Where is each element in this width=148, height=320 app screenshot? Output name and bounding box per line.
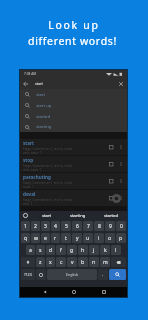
button[interactable]: k (100, 245, 110, 255)
staticText: g (70, 247, 74, 254)
staticText: Stage, Commencer il, rest to, shoot (23, 164, 73, 168)
button[interactable]: 6 (72, 221, 82, 231)
staticText: 8 (98, 223, 101, 230)
button[interactable]: t (61, 233, 71, 243)
button[interactable]: f (56, 245, 66, 255)
staticText: ?123 (24, 272, 32, 277)
staticText: English (66, 272, 79, 277)
staticText: starting (36, 124, 52, 130)
staticText: d (49, 247, 53, 254)
button[interactable]: Keyboard settings (22, 212, 29, 219)
button[interactable]: 5 (61, 221, 71, 231)
staticText: started (36, 114, 51, 120)
staticText: m (103, 259, 108, 266)
staticText: x (49, 259, 52, 266)
staticText: w (34, 235, 38, 242)
button[interactable]: h (78, 245, 88, 255)
staticText: y (76, 235, 79, 242)
staticText: f (60, 247, 62, 254)
button[interactable]: i (94, 233, 104, 243)
staticText: verb 1 (23, 202, 33, 206)
button[interactable]: English (47, 269, 97, 280)
button[interactable]: r (51, 233, 60, 243)
button[interactable]: c (56, 257, 66, 267)
button[interactable]: v (67, 257, 77, 267)
button[interactable]: x (46, 257, 55, 267)
button[interactable]: y (72, 233, 82, 243)
button[interactable]: q (21, 233, 30, 243)
staticText: start (36, 92, 46, 98)
staticText: parachuting (23, 174, 51, 180)
button[interactable]: Shift (21, 257, 35, 267)
button[interactable]: 2 (31, 221, 40, 231)
staticText: l (115, 247, 117, 254)
other: Back (23, 81, 29, 87)
button[interactable]: Scroll to top (112, 194, 121, 203)
staticText: z (39, 259, 42, 266)
button[interactable]: m (100, 257, 110, 267)
button[interactable]: 3 (41, 221, 50, 231)
other: Bookmark (109, 145, 114, 150)
button[interactable]: 9 (105, 221, 115, 231)
button[interactable]: p (116, 233, 126, 243)
staticText: 9 (109, 223, 112, 230)
button[interactable]: g (67, 245, 77, 255)
staticText: started (104, 213, 119, 219)
button[interactable]: o (105, 233, 115, 243)
button[interactable]: . (98, 269, 108, 280)
other: Clear search (118, 81, 124, 87)
other: More options (119, 145, 123, 149)
button[interactable]: 8 (94, 221, 104, 231)
button[interactable]: n (89, 257, 99, 267)
button[interactable]: Back (39, 287, 50, 297)
button[interactable]: start (20, 89, 127, 100)
button[interactable]: w (31, 233, 40, 243)
staticText: q (24, 235, 28, 242)
button[interactable]: 4 (51, 221, 60, 231)
button[interactable]: l (111, 245, 121, 255)
button[interactable]: start (20, 139, 127, 155)
button[interactable]: Back (20, 78, 127, 89)
button[interactable]: ?123 (21, 269, 35, 280)
button[interactable]: d (46, 245, 55, 255)
button[interactable]: e (41, 233, 50, 243)
button[interactable]: start up (20, 100, 127, 111)
staticText: . (102, 271, 104, 278)
staticText: 1 (24, 223, 27, 230)
staticText: start up (36, 103, 52, 109)
button[interactable]: j (89, 245, 99, 255)
staticText: n (92, 259, 96, 266)
button[interactable]: Home (68, 287, 79, 297)
staticText: v (71, 259, 74, 266)
staticText: Stage, Commencer il, rest to, shoot (23, 198, 73, 202)
button[interactable]: Recent apps (98, 287, 109, 297)
staticText: b (81, 259, 85, 266)
button[interactable]: started (20, 111, 127, 122)
staticText: h (81, 247, 85, 254)
button[interactable]: 1 (21, 221, 30, 231)
button[interactable]: u (83, 233, 93, 243)
button[interactable]: b (78, 257, 88, 267)
button[interactable]: Emoji (36, 269, 46, 280)
button[interactable]: s (36, 245, 45, 255)
other: Bookmark (109, 196, 114, 201)
button[interactable]: 0 (116, 221, 126, 231)
staticText: verb, noun 1 (23, 151, 42, 155)
button[interactable]: z (36, 257, 45, 267)
staticText: 7:38 AM (24, 72, 37, 76)
staticText: Look up (48, 18, 100, 32)
button[interactable]: Search (109, 269, 126, 280)
staticText: 6 (76, 223, 79, 230)
button[interactable]: 7 (83, 221, 93, 231)
button[interactable]: starting (20, 122, 127, 132)
staticText: start (35, 81, 43, 86)
button[interactable]: parachuting (20, 173, 127, 189)
staticText: Stage, Commencer il, rest to, shoot (23, 147, 73, 151)
button[interactable]: Backspace (111, 257, 126, 267)
button[interactable]: deval (20, 190, 127, 206)
button[interactable]: a (26, 245, 35, 255)
button[interactable]: stop (20, 156, 127, 172)
staticText: 2 (34, 223, 37, 230)
other: More options (119, 162, 123, 166)
staticText: j (93, 247, 95, 254)
